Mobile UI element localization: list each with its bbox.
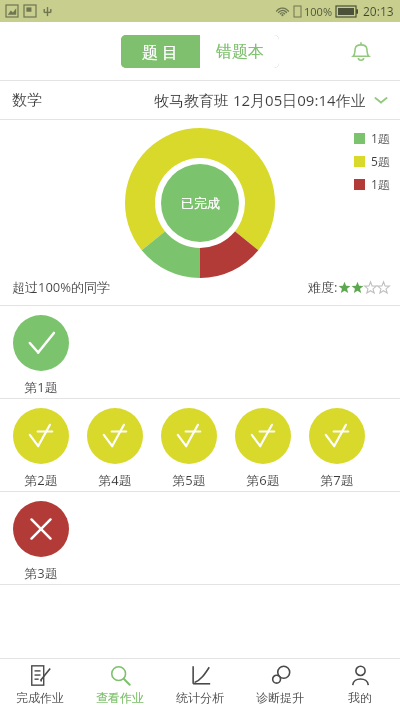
staticText: 第2题 — [24, 471, 58, 489]
button[interactable]: 统计分析 — [160, 659, 240, 711]
staticText: 第6题 — [246, 471, 280, 489]
staticText: 已完成 — [181, 195, 220, 211]
staticText: 数学 — [12, 91, 42, 110]
button[interactable]: 数学 — [0, 81, 400, 119]
button[interactable]: 诊断提升 — [240, 659, 320, 711]
staticText: 难度: — [308, 278, 338, 296]
staticText: 1题 — [371, 176, 390, 192]
staticText: 查看作业 — [96, 690, 144, 705]
staticText: 第3题 — [24, 564, 58, 582]
staticText: 第4题 — [98, 471, 132, 489]
button[interactable]: 完成作业 — [0, 659, 80, 711]
button[interactable]: 第7题 — [300, 408, 374, 489]
button[interactable]: 第1题 — [4, 315, 78, 396]
button[interactable]: 题 目 — [121, 35, 200, 68]
staticText: 牧马教育班 12月05日09:14作业 — [154, 90, 366, 110]
button[interactable]: 查看作业 — [80, 659, 160, 711]
button[interactable]: 错题本 — [200, 35, 279, 68]
staticText: 题 目 — [142, 41, 179, 63]
staticText: 完成作业 — [16, 690, 64, 705]
button[interactable]: 我的 — [320, 659, 400, 711]
button[interactable]: 第4题 — [78, 408, 152, 489]
staticText: 诊断提升 — [256, 690, 304, 705]
staticText: 1题 — [371, 130, 390, 146]
button[interactable]: Notifications — [342, 32, 380, 70]
staticText: 超过100%的同学 — [12, 278, 111, 296]
button[interactable]: 第3题 — [4, 501, 78, 582]
button[interactable]: 第5题 — [152, 408, 226, 489]
staticText: 20:13 — [363, 3, 394, 19]
staticText: 统计分析 — [176, 690, 224, 705]
staticText: 我的 — [348, 690, 372, 705]
staticText: 5题 — [371, 153, 390, 169]
staticText: 100% — [304, 4, 333, 19]
staticText: 错题本 — [216, 42, 264, 62]
button[interactable]: 第6题 — [226, 408, 300, 489]
staticText: 第1题 — [24, 378, 58, 396]
staticText: 第5题 — [172, 471, 206, 489]
button[interactable]: 第2题 — [4, 408, 78, 489]
staticText: 第7题 — [320, 471, 354, 489]
